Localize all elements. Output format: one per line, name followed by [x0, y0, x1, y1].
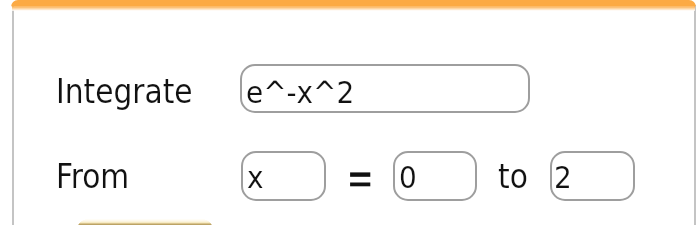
- staticText: x: [247, 159, 264, 195]
- button[interactable]: 0: [393, 151, 477, 201]
- staticText: to: [498, 157, 528, 195]
- staticText: 2: [554, 159, 572, 195]
- button[interactable]: [77, 219, 214, 225]
- button[interactable]: x: [241, 151, 326, 201]
- staticText: From: [56, 157, 130, 195]
- staticText: 0: [399, 159, 417, 195]
- staticText: Integrate: [56, 72, 193, 110]
- button[interactable]: 2: [550, 151, 635, 201]
- staticText: e^-x^2: [246, 74, 355, 110]
- button[interactable]: e^-x^2: [240, 64, 530, 113]
